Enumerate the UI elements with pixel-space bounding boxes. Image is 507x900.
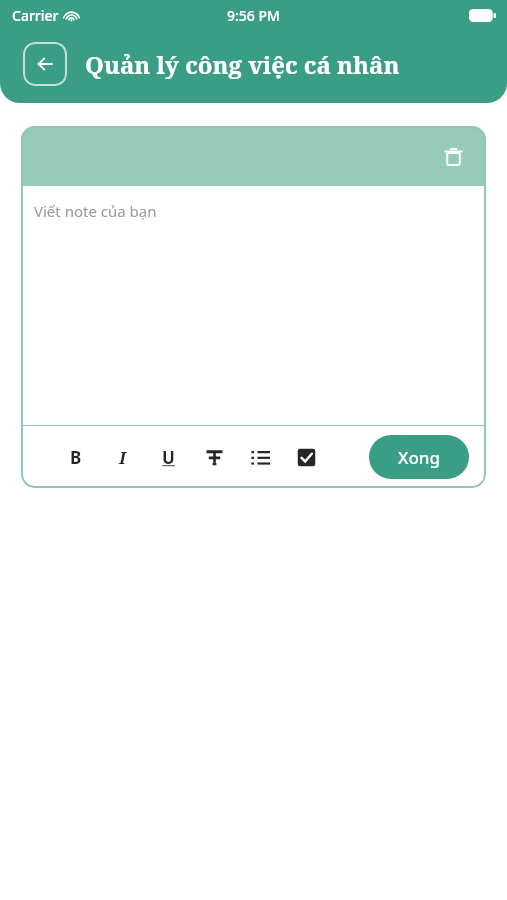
button[interactable]: Checklist <box>293 444 319 470</box>
staticText: B <box>70 446 82 469</box>
staticText: 9:56 PM <box>227 6 280 25</box>
staticText: Viết note của bạn <box>34 201 157 221</box>
staticText: Quản lý công việc cá nhân <box>85 48 400 81</box>
button[interactable]: Delete note <box>434 137 472 175</box>
button[interactable]: Numbered list <box>247 444 273 470</box>
button[interactable]: Italic <box>109 444 135 470</box>
staticText: Xong <box>398 446 440 469</box>
button[interactable]: Xong <box>369 435 469 479</box>
button[interactable]: Strikethrough <box>201 444 227 470</box>
button[interactable]: Viết note của bạn <box>21 186 486 425</box>
button[interactable]: Bold <box>63 444 89 470</box>
button[interactable]: Underline <box>155 444 181 470</box>
button[interactable]: Back <box>23 42 67 86</box>
staticText: Carrier <box>12 6 59 25</box>
staticText: I <box>119 446 126 469</box>
staticText: U <box>162 446 175 469</box>
